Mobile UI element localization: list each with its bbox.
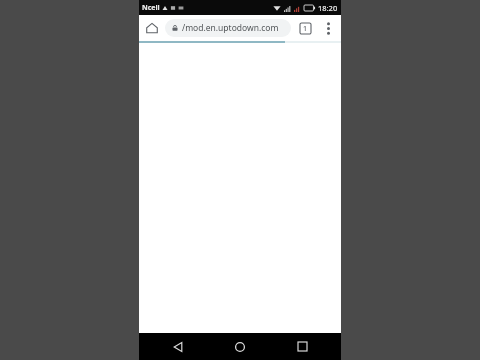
- button[interactable]: Tabs, 1 open: [293, 16, 317, 40]
- staticText: 18:20: [318, 3, 338, 13]
- button[interactable]: /mod.en.uptodown.com: [165, 19, 291, 37]
- button[interactable]: Home: [139, 15, 165, 41]
- button[interactable]: Back: [155, 333, 201, 360]
- button[interactable]: More options: [317, 17, 339, 39]
- staticText: /mod.en.uptodown.com: [182, 22, 279, 34]
- button[interactable]: Recent apps: [279, 333, 325, 360]
- staticText: 1: [303, 24, 308, 34]
- staticText: Ncell: [142, 3, 160, 13]
- button[interactable]: Home: [217, 333, 263, 360]
